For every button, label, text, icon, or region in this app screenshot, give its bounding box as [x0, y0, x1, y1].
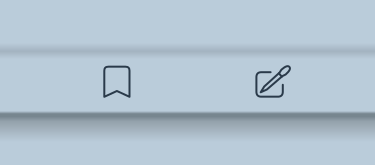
button[interactable]: Compose [254, 60, 294, 100]
button[interactable]: Bookmarks [103, 64, 131, 98]
